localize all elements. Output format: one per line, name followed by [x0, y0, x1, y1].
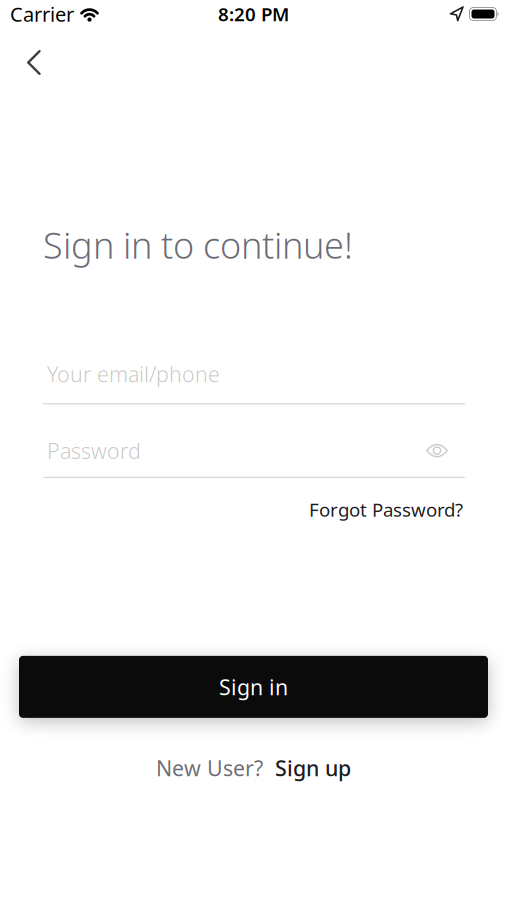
staticText: Your email/phone	[47, 360, 220, 388]
staticText: Sign in to continue!	[43, 221, 353, 269]
staticText: New User?	[156, 754, 269, 782]
button[interactable]: Sign in	[19, 656, 488, 718]
staticText: Sign in	[219, 673, 288, 701]
button[interactable]: Sign up	[269, 754, 351, 782]
staticText: Password	[47, 436, 141, 465]
button[interactable]: Forgot Password?	[309, 497, 463, 522]
button[interactable]: Show password	[426, 443, 465, 458]
button[interactable]: Back	[0, 28, 61, 97]
staticText: Sign up	[269, 754, 351, 782]
staticText: 8:20 PM	[218, 2, 289, 26]
staticText: Carrier	[10, 1, 74, 27]
staticText: Forgot Password?	[309, 497, 463, 522]
